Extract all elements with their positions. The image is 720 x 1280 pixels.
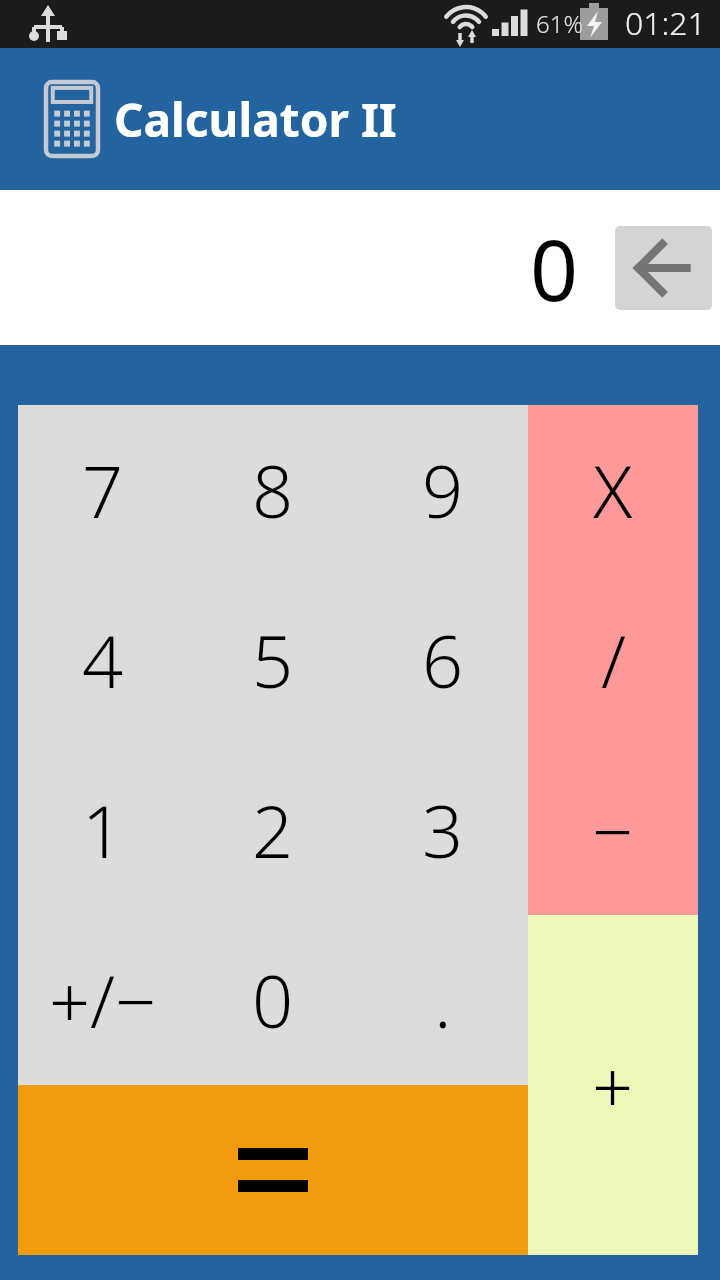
button[interactable]: 4 — [18, 575, 188, 745]
staticText: 0 — [530, 211, 579, 325]
staticText: 0 — [252, 951, 294, 1049]
staticText: X — [593, 441, 633, 539]
button[interactable]: − — [528, 745, 698, 915]
button[interactable]: Equals — [18, 1085, 528, 1255]
other: Equals — [238, 1145, 308, 1195]
button[interactable]: Backspace — [615, 226, 712, 310]
staticText: 6 — [422, 611, 464, 709]
staticText: 8 — [252, 441, 294, 539]
staticText: 3 — [422, 781, 464, 879]
button[interactable]: 0 — [188, 915, 358, 1085]
staticText: 2 — [252, 781, 294, 879]
staticText: 5 — [252, 611, 294, 709]
staticText: 7 — [82, 441, 124, 539]
button[interactable]: 2 — [188, 745, 358, 915]
staticText: Calculator II — [114, 88, 397, 151]
button[interactable]: + — [528, 915, 698, 1255]
staticText: 1 — [82, 781, 124, 879]
staticText: / — [601, 611, 626, 709]
button[interactable]: 8 — [188, 405, 358, 575]
staticText: − — [592, 781, 634, 879]
button[interactable]: X — [528, 405, 698, 575]
button[interactable]: 3 — [358, 745, 528, 915]
staticText: 4 — [82, 611, 124, 709]
button[interactable]: 5 — [188, 575, 358, 745]
button[interactable]: 1 — [18, 745, 188, 915]
staticText: 61% — [536, 7, 583, 40]
button[interactable]: 6 — [358, 575, 528, 745]
button[interactable]: 7 — [18, 405, 188, 575]
staticText: + — [592, 1036, 634, 1134]
staticText: 9 — [422, 441, 464, 539]
button[interactable]: 9 — [358, 405, 528, 575]
button[interactable]: / — [528, 575, 698, 745]
staticText: 01:21 — [625, 1, 706, 45]
button[interactable]: . — [358, 915, 528, 1085]
staticText: +/− — [49, 951, 157, 1049]
staticText: . — [434, 951, 452, 1049]
button[interactable]: +/− — [18, 915, 188, 1085]
